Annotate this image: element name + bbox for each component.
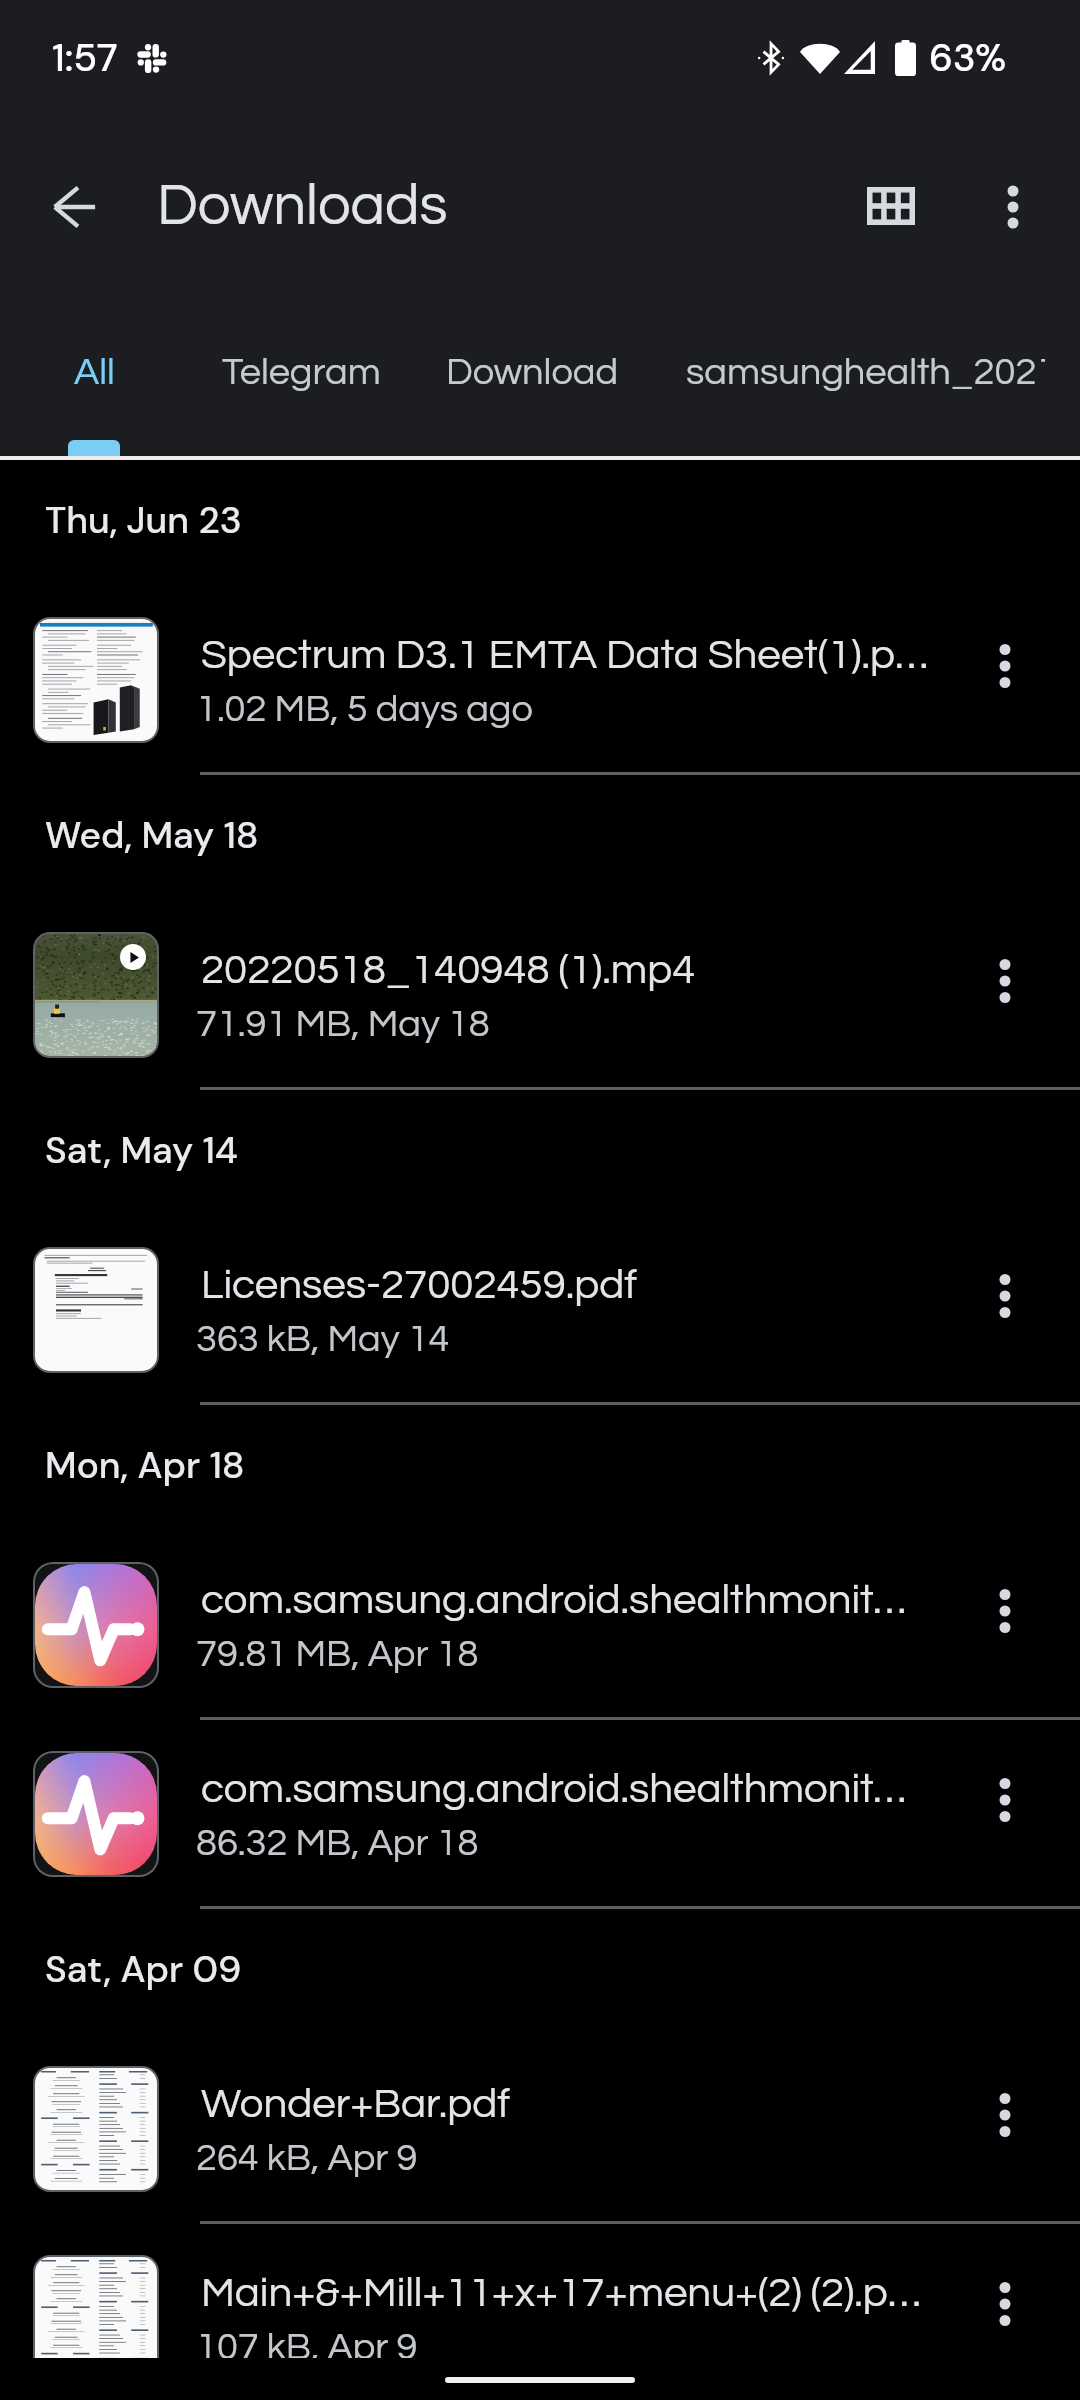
button[interactable]: Download — [416, 294, 661, 456]
staticText: Mon, Apr 18 — [45, 1441, 245, 1489]
staticText: 86.32 MB, Apr 18 — [196, 1824, 479, 1863]
button[interactable]: Spectrum D3.1 EMTA Data Sheet(1).p… — [0, 586, 1080, 775]
staticText: Downloads — [157, 176, 448, 236]
button[interactable]: 20220518_140948 (1).mp4 — [0, 901, 1080, 1090]
staticText: 71.91 MB, May 18 — [196, 1005, 490, 1044]
button[interactable]: More options — [965, 156, 1061, 252]
staticText: Thu, Jun 23 — [45, 496, 242, 544]
button[interactable]: samsunghealth_202111 — [661, 294, 1080, 456]
staticText: 63% — [929, 33, 1007, 82]
staticText: Wonder+Bar.pdf — [201, 2083, 511, 2126]
staticText: Wed, May 18 — [45, 811, 259, 859]
staticText: Main+&+Mill+11+x+17+menu+(2) (2).p… — [201, 2272, 921, 2315]
staticText: Download — [446, 353, 619, 392]
staticText: 264 kB, Apr 9 — [196, 2139, 418, 2178]
button[interactable]: More options — [957, 2067, 1053, 2163]
button[interactable]: More options — [957, 2256, 1053, 2352]
staticText: 107 kB, Apr 9 — [196, 2328, 418, 2358]
button[interactable]: Licenses-27002459.pdf — [0, 1216, 1080, 1405]
staticText: com.samsung.android.shealthmonit… — [201, 1768, 907, 1811]
button[interactable]: Main+&+Mill+11+x+17+menu+(2) (2).p… — [0, 2224, 1080, 2358]
button[interactable]: More options — [957, 933, 1053, 1029]
button[interactable]: All — [0, 294, 151, 456]
staticText: Telegram — [222, 353, 381, 392]
button[interactable]: com.samsung.android.shealthmonit… — [0, 1531, 1080, 1720]
button[interactable]: More options — [957, 1752, 1053, 1848]
staticText: 1:57 — [52, 32, 118, 83]
staticText: samsunghealth_202111 — [686, 353, 1045, 392]
button[interactable]: com.samsung.android.shealthmonit… — [0, 1720, 1080, 1909]
staticText: 1.02 MB, 5 days ago — [196, 690, 533, 729]
staticText: 363 kB, May 14 — [196, 1320, 450, 1359]
staticText: Sat, May 14 — [45, 1126, 238, 1174]
button[interactable]: More options — [957, 618, 1053, 714]
staticText: Sat, Apr 09 — [45, 1945, 242, 1993]
button[interactable]: Wonder+Bar.pdf — [0, 2035, 1080, 2224]
button[interactable]: Navigate up — [26, 156, 122, 252]
button[interactable]: More options — [957, 1248, 1053, 1344]
staticText: All — [74, 353, 115, 392]
staticText: Licenses-27002459.pdf — [201, 1264, 638, 1307]
button[interactable]: Telegram — [151, 294, 416, 456]
staticText: 20220518_140948 (1).mp4 — [201, 949, 696, 992]
staticText: 79.81 MB, Apr 18 — [196, 1635, 479, 1674]
button[interactable]: Grid view — [842, 156, 938, 252]
button[interactable]: More options — [957, 1563, 1053, 1659]
staticText: com.samsung.android.shealthmonit… — [201, 1579, 907, 1622]
staticText: Spectrum D3.1 EMTA Data Sheet(1).p… — [201, 634, 929, 677]
